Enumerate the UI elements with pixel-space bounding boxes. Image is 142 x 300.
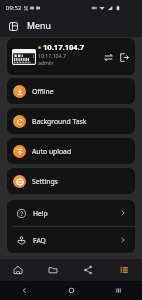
staticText: 10.17.104.7 xyxy=(43,42,85,52)
button[interactable]: Offline xyxy=(7,78,135,104)
button[interactable]: FAQ xyxy=(7,227,135,253)
button[interactable]: Files xyxy=(35,259,70,281)
staticText: 09:52 xyxy=(6,4,22,12)
button[interactable]: Open navigation drawer xyxy=(5,18,22,35)
staticText: Background Task xyxy=(32,117,87,126)
button[interactable]: Background Task xyxy=(7,108,135,134)
button[interactable]: Help xyxy=(7,200,135,226)
staticText: Help xyxy=(33,209,48,218)
button[interactable]: Menu xyxy=(106,259,142,281)
button[interactable]: Switch server xyxy=(100,49,116,65)
staticText: FAQ xyxy=(33,236,46,245)
button[interactable]: Auto upload xyxy=(7,138,135,164)
staticText: Offline xyxy=(32,87,54,96)
staticText: 10.17.104.7 xyxy=(38,52,66,59)
button[interactable]: Settings xyxy=(7,168,135,194)
staticText: admin xyxy=(38,59,54,66)
button[interactable]: Shared xyxy=(70,259,106,281)
button[interactable]: Home xyxy=(0,259,35,281)
staticText: Menu xyxy=(27,20,51,32)
staticText: Settings xyxy=(32,177,58,186)
button[interactable]: Log out xyxy=(116,49,132,65)
button[interactable]: 10.17.104.7 xyxy=(7,38,135,75)
staticText: Auto upload xyxy=(32,147,72,156)
